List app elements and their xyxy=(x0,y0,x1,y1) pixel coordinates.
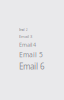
staticText: Email 4 xyxy=(19,41,36,48)
staticText: Email 5 xyxy=(19,50,43,59)
staticText: Email 2 xyxy=(19,28,28,32)
staticText: Email 6 xyxy=(19,61,45,72)
staticText: Email 3 xyxy=(19,34,32,39)
